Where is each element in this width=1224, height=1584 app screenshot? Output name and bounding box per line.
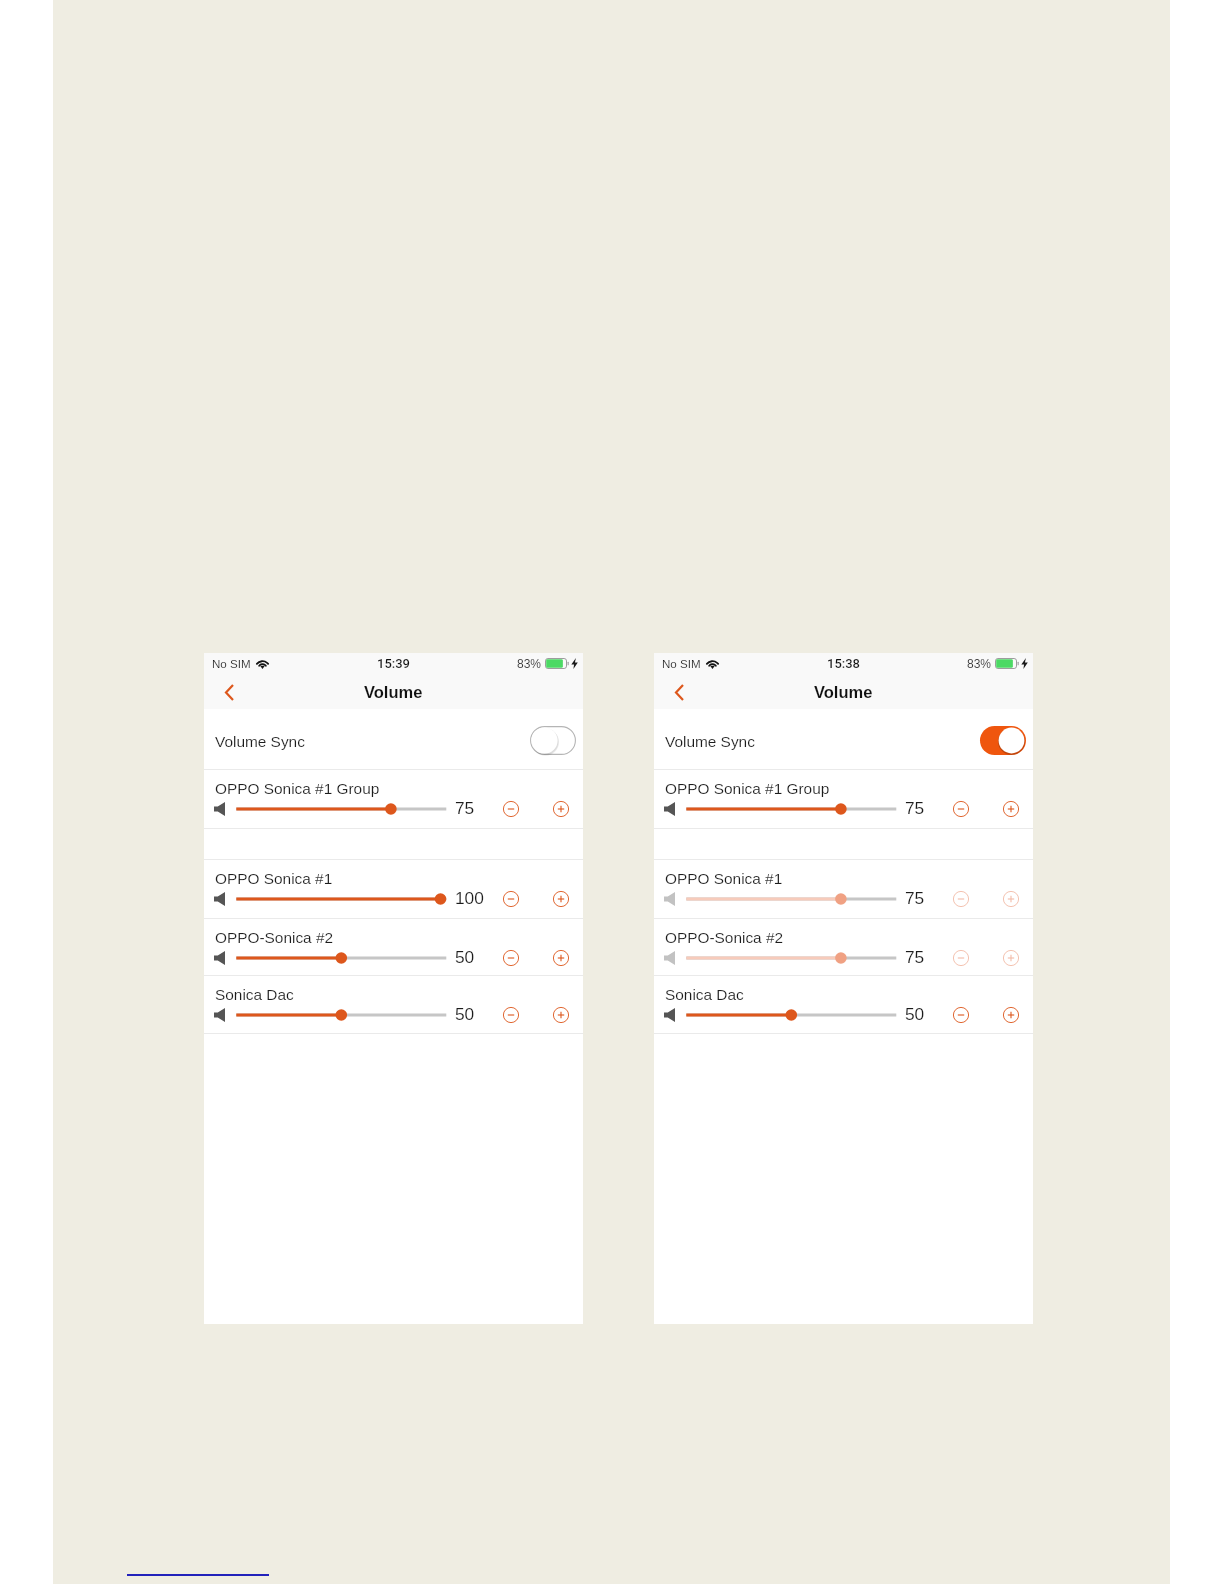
button[interactable]: OPPO Sonica #1 Group [654, 770, 1033, 828]
staticText: OPPO Sonica #1 [215, 870, 333, 887]
staticText: 15:39 [377, 656, 411, 671]
staticText: OPPO-Sonica #2 [215, 929, 334, 946]
staticText: OPPO Sonica #1 [665, 870, 783, 887]
staticText: 83% [517, 657, 542, 670]
staticText: 75 [905, 888, 925, 907]
button[interactable]: Decrease volume [500, 1004, 522, 1026]
button[interactable]: Increase volume [1000, 798, 1022, 820]
button[interactable]: Decrease volume [950, 798, 972, 820]
staticText: OPPO Sonica #1 Group [215, 780, 380, 797]
staticText: Volume Sync [215, 733, 305, 750]
staticText: 50 [455, 1004, 475, 1023]
button[interactable]: Decrease volume [950, 947, 972, 969]
button[interactable]: Decrease volume [500, 947, 522, 969]
button[interactable]: Sonica Dac [204, 976, 583, 1033]
staticText: OPPO-Sonica #2 [665, 929, 784, 946]
button[interactable]: Volume Sync [654, 709, 1033, 769]
button[interactable]: Decrease volume [500, 888, 522, 910]
button[interactable]: OPPO Sonica #1 [654, 860, 1033, 918]
staticText: 100 [455, 888, 484, 907]
button[interactable]: Volume Sync toggle [530, 726, 576, 755]
button[interactable]: Increase volume [550, 888, 572, 910]
staticText: Sonica Dac [215, 986, 294, 1003]
staticText: Volume Sync [665, 733, 755, 750]
staticText: Sonica Dac [665, 986, 744, 1003]
button[interactable]: Increase volume [550, 947, 572, 969]
staticText: 75 [455, 798, 475, 817]
button[interactable]: Back [668, 681, 690, 703]
button[interactable]: Sonica Dac [654, 976, 1033, 1033]
staticText: Volume [364, 683, 423, 701]
button[interactable]: Increase volume [1000, 888, 1022, 910]
staticText: 50 [905, 1004, 925, 1023]
staticText: No SIM [662, 657, 701, 670]
staticText: 15:38 [827, 656, 861, 671]
button[interactable]: Decrease volume [950, 1004, 972, 1026]
staticText: 75 [905, 798, 925, 817]
button[interactable]: OPPO Sonica #1 [204, 860, 583, 918]
button[interactable]: OPPO Sonica #1 Group [204, 770, 583, 828]
button[interactable]: OPPO-Sonica #2 [204, 919, 583, 975]
button[interactable]: Increase volume [550, 1004, 572, 1026]
button[interactable]: Decrease volume [950, 888, 972, 910]
button[interactable]: Back [218, 681, 240, 703]
staticText: OPPO Sonica #1 Group [665, 780, 830, 797]
button[interactable]: Volume Sync [204, 709, 583, 769]
button[interactable]: OPPO-Sonica #2 [654, 919, 1033, 975]
staticText: No SIM [212, 657, 251, 670]
button[interactable]: Increase volume [1000, 1004, 1022, 1026]
staticText: Volume [814, 683, 873, 701]
staticText: 83% [967, 657, 992, 670]
button[interactable]: Increase volume [1000, 947, 1022, 969]
staticText: 75 [905, 947, 925, 966]
button[interactable]: Volume Sync toggle [980, 726, 1026, 755]
button[interactable]: Decrease volume [500, 798, 522, 820]
staticText: 50 [455, 947, 475, 966]
button[interactable]: Increase volume [550, 798, 572, 820]
